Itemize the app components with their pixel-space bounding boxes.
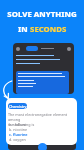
button[interactable]: Chemistry bbox=[8, 103, 27, 109]
staticText: a. sodium bbox=[9, 122, 26, 127]
button[interactable]: Chemistry bbox=[6, 98, 77, 145]
staticText: IN bbox=[18, 24, 30, 35]
staticText: Chemistry bbox=[9, 104, 27, 109]
staticText: SECONDS bbox=[30, 24, 67, 35]
staticText: The most electronegative element among bbox=[8, 112, 77, 122]
staticText: b. nicotine bbox=[9, 127, 28, 132]
button[interactable] bbox=[13, 43, 74, 94]
staticText: d. oxygen bbox=[9, 137, 26, 142]
button[interactable]: Scroll down bbox=[38, 143, 47, 150]
staticText: the following is bbox=[8, 122, 35, 127]
staticText: c. fluorine bbox=[9, 132, 28, 137]
staticText: SOLVE ANYTHING bbox=[7, 9, 77, 20]
